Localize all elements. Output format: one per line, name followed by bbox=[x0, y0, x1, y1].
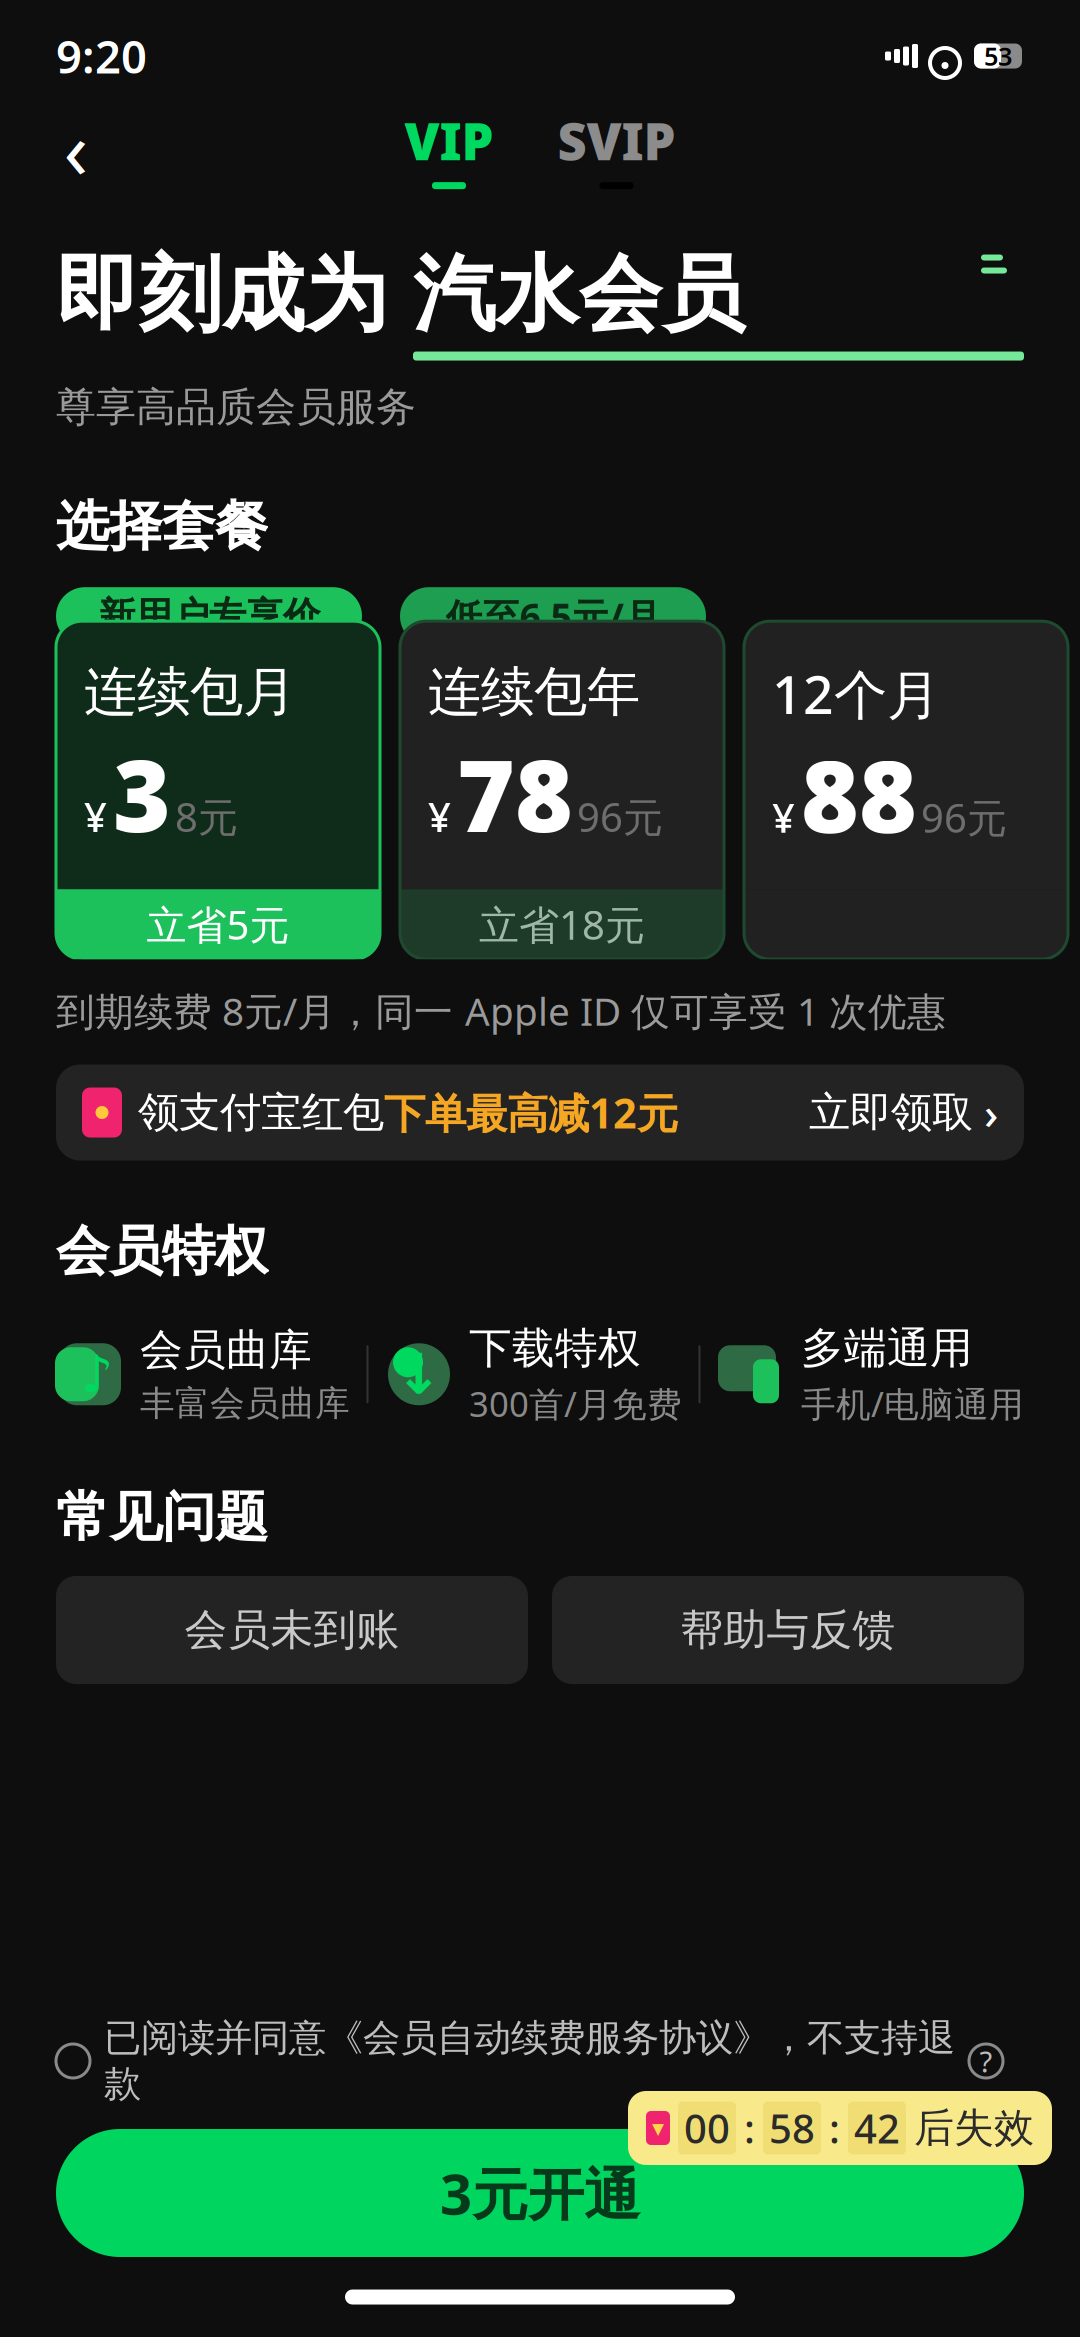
staticText: › bbox=[973, 1083, 998, 1142]
staticText: 常见问题 bbox=[56, 1484, 268, 1550]
staticText: 即刻成为 bbox=[56, 244, 413, 345]
staticText: 会员曲库 bbox=[140, 1324, 312, 1376]
staticText: 立省18元 bbox=[479, 898, 645, 951]
staticText: 新用户专享价 bbox=[98, 593, 320, 639]
staticText: 12个月 bbox=[772, 658, 940, 729]
staticText: ? bbox=[979, 2041, 992, 2080]
staticText: 立省5元 bbox=[146, 898, 289, 951]
button[interactable]: 已阅读并同意《会员自动续费服务协议》，不支持退款 bbox=[0, 2031, 1080, 2091]
staticText: 300首/月免费 bbox=[469, 1380, 682, 1426]
staticText: ¥ bbox=[772, 791, 795, 844]
staticText: 连续包月 bbox=[84, 659, 296, 725]
staticText: 低至6.5元/月 bbox=[445, 591, 660, 641]
staticText: ♪ bbox=[81, 1345, 113, 1403]
staticText: 8元 bbox=[175, 790, 238, 843]
staticText: 立即领取 bbox=[809, 1087, 973, 1138]
button[interactable]: VIP bbox=[404, 110, 493, 186]
staticText: 下单最高减12元 bbox=[384, 1085, 678, 1140]
staticText: 3元开通 bbox=[440, 2156, 640, 2230]
button[interactable]: 新用户专享价 bbox=[56, 587, 380, 959]
staticText: 9:20 bbox=[56, 26, 147, 86]
staticText: 选择套餐 bbox=[56, 494, 268, 559]
button[interactable]: 12个月 bbox=[744, 587, 1068, 959]
staticText: 3 bbox=[113, 728, 171, 859]
staticText: ▾ bbox=[652, 2114, 664, 2142]
staticText: 手机/电脑通用 bbox=[801, 1380, 1024, 1426]
button[interactable]: 帮助与反馈 bbox=[552, 1576, 1024, 1684]
staticText: 后失效 bbox=[914, 2103, 1034, 2152]
button[interactable]: 领支付宝红包 bbox=[56, 1064, 1024, 1160]
staticText: 会员特权 bbox=[56, 1218, 268, 1284]
staticText: ‹ bbox=[63, 95, 88, 201]
staticText: 00 bbox=[684, 2101, 730, 2154]
staticText: ¥ bbox=[84, 790, 107, 843]
staticText: 已阅读并同意《会员自动续费服务协议》，不支持退款 bbox=[104, 2015, 955, 2107]
staticText: 连续包年 bbox=[428, 659, 640, 725]
staticText: 下载特权 bbox=[469, 1322, 641, 1374]
button[interactable]: 3元开通 bbox=[56, 2129, 1024, 2257]
staticText: 多端通用 bbox=[801, 1322, 973, 1374]
staticText: 会员未到账 bbox=[184, 1604, 399, 1656]
staticText: 丰富会员曲库 bbox=[140, 1382, 350, 1425]
button[interactable]: 低至6.5元/月 bbox=[400, 587, 724, 959]
button[interactable]: SVIP bbox=[557, 110, 675, 186]
staticText: 领支付宝红包 bbox=[138, 1087, 384, 1138]
staticText: 到期续费 8元/月，同一 Apple ID 仅可享受 1 次优惠 bbox=[56, 985, 946, 1036]
button[interactable]: 会员未到账 bbox=[56, 1576, 528, 1684]
staticText: 尊享高品质会员服务 bbox=[56, 382, 416, 432]
staticText: VIP bbox=[404, 107, 493, 174]
staticText: 88 bbox=[801, 729, 917, 860]
staticText: : bbox=[829, 2101, 840, 2154]
button[interactable]: Back bbox=[34, 106, 118, 190]
staticText: : bbox=[744, 2101, 755, 2154]
staticText: 53 bbox=[984, 39, 1012, 73]
staticText: 96元 bbox=[921, 791, 1007, 844]
staticText: 58 bbox=[769, 2101, 815, 2154]
staticText: SVIP bbox=[557, 107, 675, 174]
staticText: 42 bbox=[854, 2101, 900, 2154]
staticText: ¥ bbox=[428, 790, 451, 843]
staticText: ↓ bbox=[395, 1342, 442, 1406]
staticText: 78 bbox=[457, 728, 573, 859]
staticText: 96元 bbox=[577, 790, 663, 843]
staticText: 汽水会员 bbox=[413, 244, 745, 345]
staticText: 帮助与反馈 bbox=[680, 1604, 895, 1656]
